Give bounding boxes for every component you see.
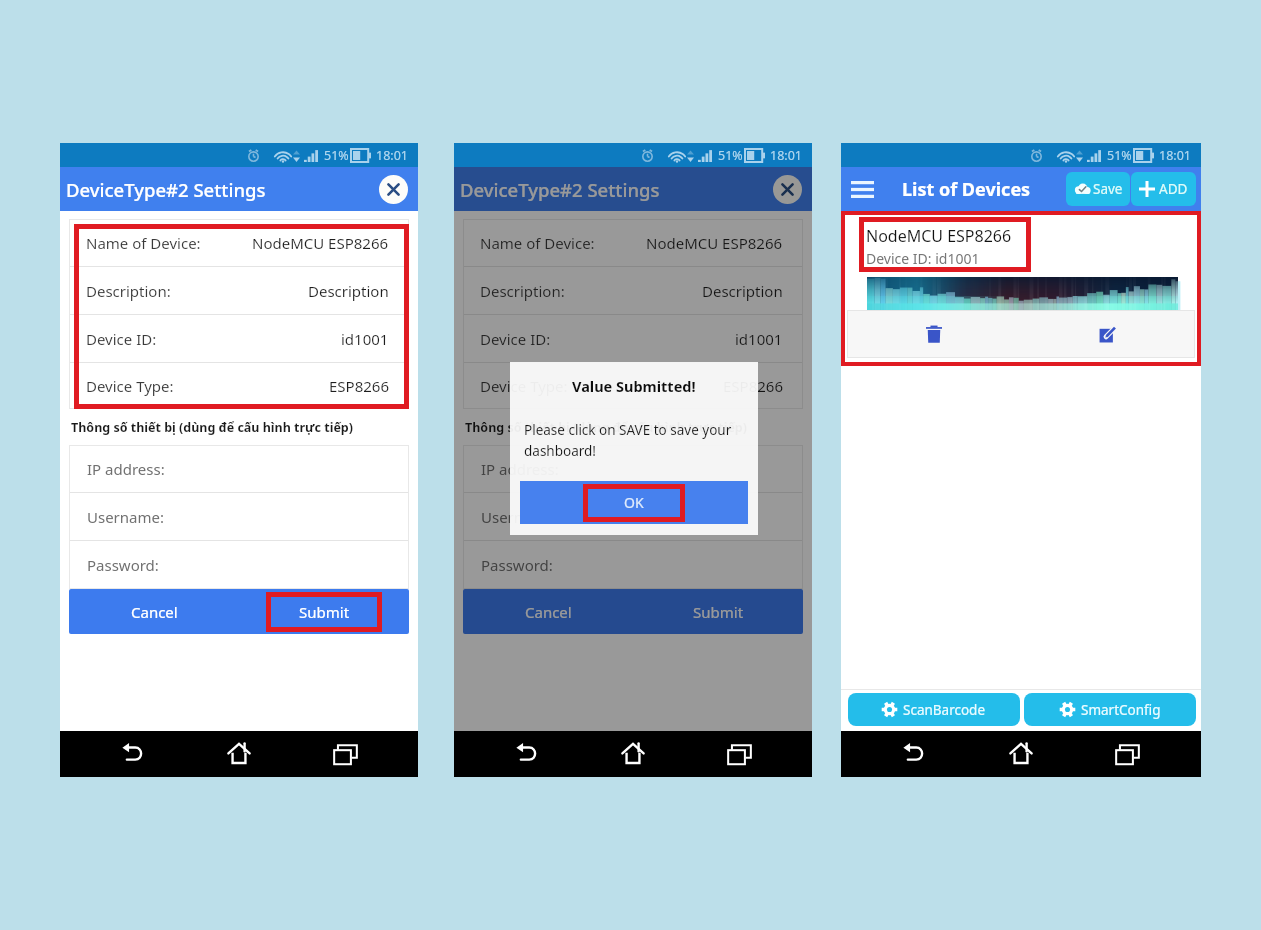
staticText: ESP8266 xyxy=(329,376,389,396)
button[interactable]: Password: xyxy=(463,541,803,589)
staticText: NodeMCU ESP8266 xyxy=(646,233,783,253)
staticText: 18:01 xyxy=(376,147,408,164)
staticText: Name of Device: xyxy=(86,233,201,253)
staticText: Cancel xyxy=(525,602,572,622)
button[interactable]: OK xyxy=(520,481,748,524)
button[interactable]: DeviceType#2 Settings xyxy=(60,167,418,211)
staticText: Password: xyxy=(87,555,159,575)
staticText: Cancel xyxy=(131,602,178,622)
button[interactable]: Back xyxy=(80,731,186,777)
staticText: 51% xyxy=(1107,147,1132,164)
button[interactable]: Description: xyxy=(463,267,803,314)
button[interactable]: Home xyxy=(186,731,292,777)
staticText: id1001 xyxy=(341,329,389,349)
button[interactable]: IP address: xyxy=(69,445,409,492)
staticText: ADD xyxy=(1159,180,1188,198)
staticText: OK xyxy=(624,493,644,512)
button[interactable]: Device Type: xyxy=(463,363,803,409)
staticText: SmartConfig xyxy=(1081,701,1161,719)
button[interactable]: Name of Device: xyxy=(69,219,409,266)
button[interactable]: Submit xyxy=(633,589,803,634)
button[interactable]: Name of Device: xyxy=(463,219,803,266)
staticText: Submit xyxy=(299,602,350,622)
staticText: NodeMCU ESP8266 xyxy=(252,233,389,253)
staticText: ESP8266 xyxy=(723,376,783,396)
staticText: id1001 xyxy=(735,329,783,349)
staticText: List of Devices xyxy=(902,177,1031,202)
button[interactable]: Password: xyxy=(69,541,409,589)
staticText: IP address: xyxy=(87,459,165,479)
button[interactable]: Edit xyxy=(1021,310,1195,358)
staticText: IP address: xyxy=(481,459,559,479)
button[interactable]: Delete xyxy=(847,310,1021,358)
button[interactable]: Username: xyxy=(463,493,803,540)
staticText: Device ID: xyxy=(86,329,157,349)
button[interactable]: Submit xyxy=(239,589,409,634)
staticText: Name of Device: xyxy=(480,233,595,253)
staticText: 51% xyxy=(324,147,349,164)
staticText: DeviceType#2 Settings xyxy=(460,177,660,202)
staticText: Thông số thiết bị (dùng để cấu hình trực… xyxy=(71,419,354,436)
button[interactable]: Close xyxy=(379,175,408,204)
button[interactable]: Recents xyxy=(292,731,398,777)
staticText: Thông số thiết bị (dùng để cấu hình trực… xyxy=(465,419,748,436)
button[interactable]: Cancel xyxy=(463,589,633,634)
button[interactable]: Save xyxy=(1066,172,1130,206)
staticText: Value Submitted! xyxy=(572,376,696,396)
button[interactable]: SmartConfig xyxy=(1024,693,1196,726)
staticText: Device Type: xyxy=(480,376,568,396)
button[interactable]: Description: xyxy=(69,267,409,314)
button[interactable]: ScanBarcode xyxy=(848,693,1020,726)
button[interactable]: Device ID: xyxy=(463,315,803,362)
button[interactable]: Recents xyxy=(686,731,792,777)
button[interactable]: Home xyxy=(580,731,686,777)
staticText: Username: xyxy=(481,507,558,527)
staticText: Description: xyxy=(480,281,565,301)
button[interactable]: Back xyxy=(474,731,580,777)
staticText: 18:01 xyxy=(1159,147,1191,164)
staticText: Save xyxy=(1093,180,1123,198)
button[interactable]: IP address: xyxy=(463,445,803,492)
staticText: 18:01 xyxy=(770,147,802,164)
staticText: Device ID: id1001 xyxy=(866,249,980,268)
staticText: Device ID: xyxy=(480,329,551,349)
button[interactable]: ADD xyxy=(1131,172,1196,206)
staticText: Description xyxy=(308,281,389,301)
button[interactable]: Device ID: xyxy=(69,315,409,362)
button[interactable]: Home xyxy=(967,731,1074,777)
staticText: NodeMCU ESP8266 xyxy=(866,225,1012,247)
staticText: DeviceType#2 Settings xyxy=(66,177,266,202)
staticText: Submit xyxy=(693,602,744,622)
staticText: ScanBarcode xyxy=(903,701,986,719)
button[interactable]: Cancel xyxy=(69,589,239,634)
button[interactable]: Back xyxy=(861,731,967,777)
staticText: Description xyxy=(702,281,783,301)
button[interactable]: Device Type: xyxy=(69,363,409,409)
button[interactable]: Username: xyxy=(69,493,409,540)
staticText: Device Type: xyxy=(86,376,174,396)
staticText: Description: xyxy=(86,281,171,301)
staticText: Username: xyxy=(87,507,164,527)
staticText: Password: xyxy=(481,555,553,575)
button[interactable]: NodeMCU ESP8266 xyxy=(847,216,1195,358)
staticText: 51% xyxy=(718,147,743,164)
staticText: Please click on SAVE to save your dashbo… xyxy=(524,421,748,460)
button[interactable]: Recents xyxy=(1074,731,1181,777)
button[interactable]: Menu xyxy=(841,168,883,210)
